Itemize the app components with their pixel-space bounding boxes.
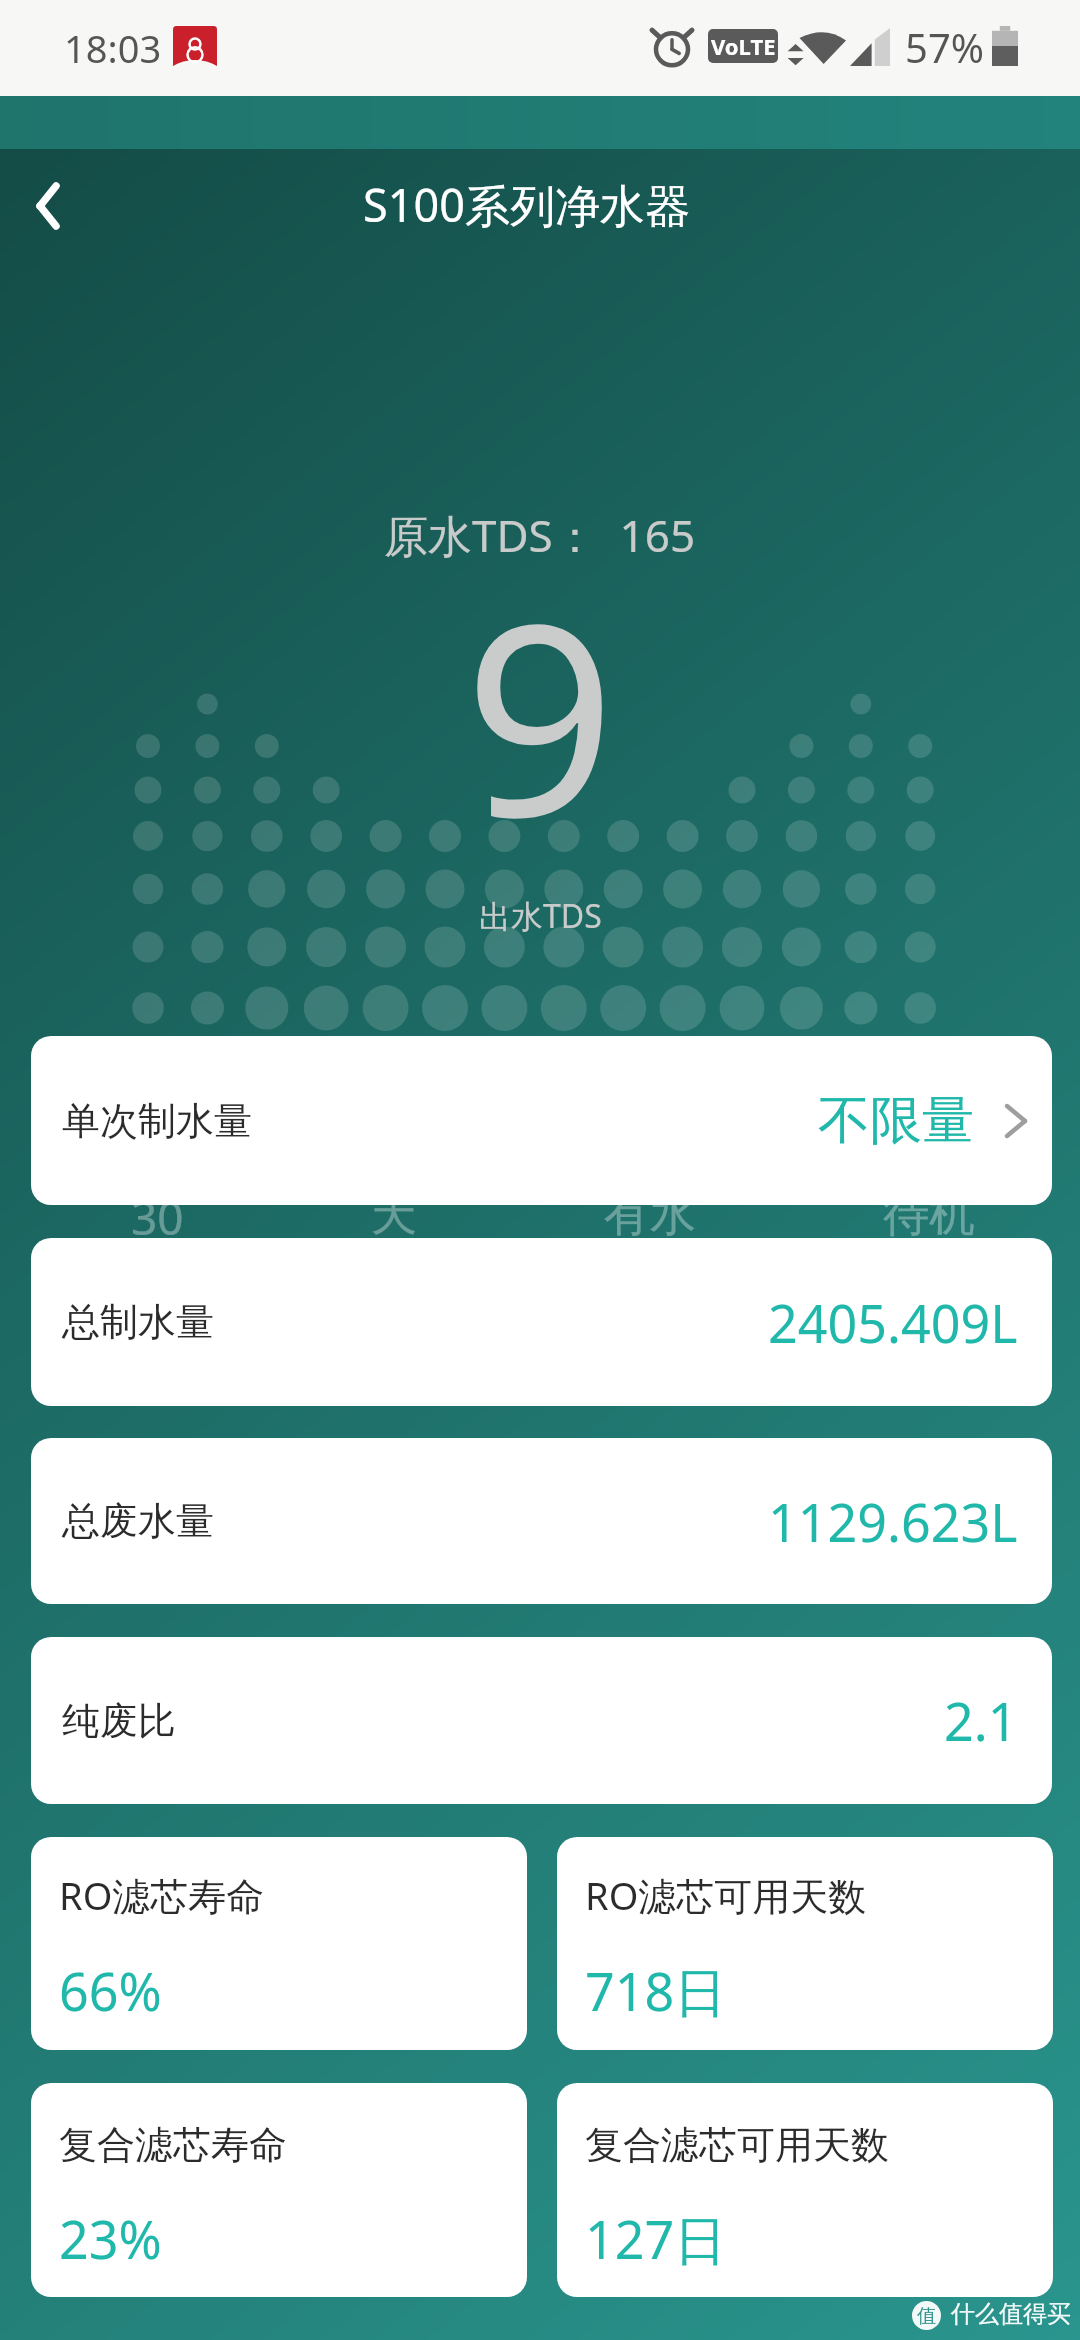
- staticText: 127日: [585, 2203, 727, 2274]
- staticText: 待机: [883, 1186, 975, 1244]
- staticText: 天: [371, 1186, 417, 1244]
- staticText: 30: [131, 1186, 184, 1249]
- staticText: 不限量: [818, 1088, 974, 1154]
- button[interactable]: RO滤芯可用天数: [557, 1837, 1053, 2050]
- staticText: 复合滤芯寿命: [59, 2121, 287, 2169]
- staticText: 复合滤芯可用天数: [585, 2121, 889, 2169]
- button[interactable]: 总废水量: [31, 1438, 1052, 1604]
- staticText: 57%: [905, 20, 984, 74]
- staticText: 总废水量: [62, 1497, 214, 1545]
- staticText: RO滤芯寿命: [59, 1869, 265, 1921]
- staticText: 纯废比: [62, 1697, 176, 1745]
- staticText: 什么值得买: [951, 2299, 1071, 2329]
- staticText: 出水TDS: [479, 894, 602, 938]
- staticText: VoLTE: [711, 31, 776, 61]
- staticText: 原水TDS： 165: [384, 505, 696, 565]
- staticText: 2.1: [944, 1685, 1018, 1756]
- staticText: 23%: [59, 2203, 162, 2274]
- staticText: 2405.409L: [768, 1287, 1018, 1358]
- staticText: 718日: [585, 1955, 727, 2026]
- button[interactable]: 复合滤芯可用天数: [557, 2083, 1053, 2297]
- button[interactable]: 纯废比: [31, 1637, 1052, 1804]
- button[interactable]: Back: [4, 168, 92, 244]
- staticText: 单次制水量: [62, 1097, 252, 1145]
- button[interactable]: 复合滤芯寿命: [31, 2083, 527, 2297]
- staticText: 总制水量: [62, 1298, 214, 1346]
- staticText: RO滤芯可用天数: [585, 1869, 867, 1921]
- button[interactable]: RO滤芯寿命: [31, 1837, 527, 2050]
- staticText: 66%: [59, 1955, 162, 2026]
- staticText: 1129.623L: [768, 1486, 1018, 1557]
- button[interactable]: 单次制水量: [31, 1036, 1052, 1205]
- staticText: 18:03: [64, 22, 162, 74]
- staticText: 9: [464, 533, 616, 894]
- staticText: S100系列净水器: [363, 174, 690, 235]
- staticText: 有水: [604, 1186, 696, 1244]
- staticText: 值: [917, 2304, 936, 2328]
- button[interactable]: 总制水量: [31, 1238, 1052, 1406]
